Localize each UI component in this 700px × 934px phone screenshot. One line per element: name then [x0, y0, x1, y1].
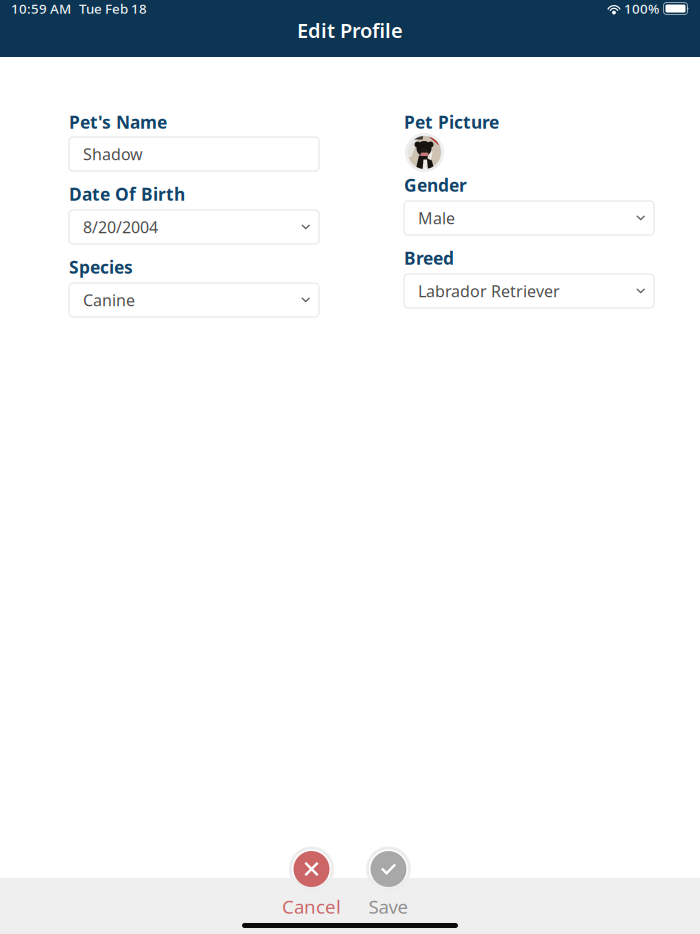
- staticText: Canine: [83, 289, 135, 311]
- button[interactable]: Canine: [69, 283, 319, 317]
- button[interactable]: 8/20/2004: [69, 210, 319, 244]
- staticText: Pet's Name: [69, 110, 167, 133]
- button[interactable]: Cancel: [273, 848, 350, 919]
- staticText: Shadow: [83, 143, 143, 165]
- staticText: Labrador Retriever: [418, 280, 560, 302]
- button[interactable]: Male: [404, 201, 654, 235]
- staticText: 8/20/2004: [83, 216, 158, 238]
- staticText: Species: [69, 255, 133, 278]
- staticText: 10:59 AM: [11, 0, 71, 17]
- staticText: 100%: [624, 0, 659, 17]
- staticText: Gender: [404, 173, 467, 196]
- staticText: Edit Profile: [297, 17, 403, 44]
- staticText: Pet Picture: [404, 110, 499, 133]
- staticText: Male: [418, 207, 455, 229]
- staticText: Breed: [404, 246, 454, 269]
- staticText: Cancel: [282, 894, 341, 919]
- button[interactable]: Save: [350, 848, 427, 919]
- staticText: Save: [368, 894, 408, 919]
- button[interactable]: Labrador Retriever: [404, 274, 654, 308]
- staticText: Tue Feb 18: [79, 0, 147, 17]
- staticText: Date Of Birth: [69, 182, 185, 205]
- button[interactable]: Shadow: [69, 137, 319, 171]
